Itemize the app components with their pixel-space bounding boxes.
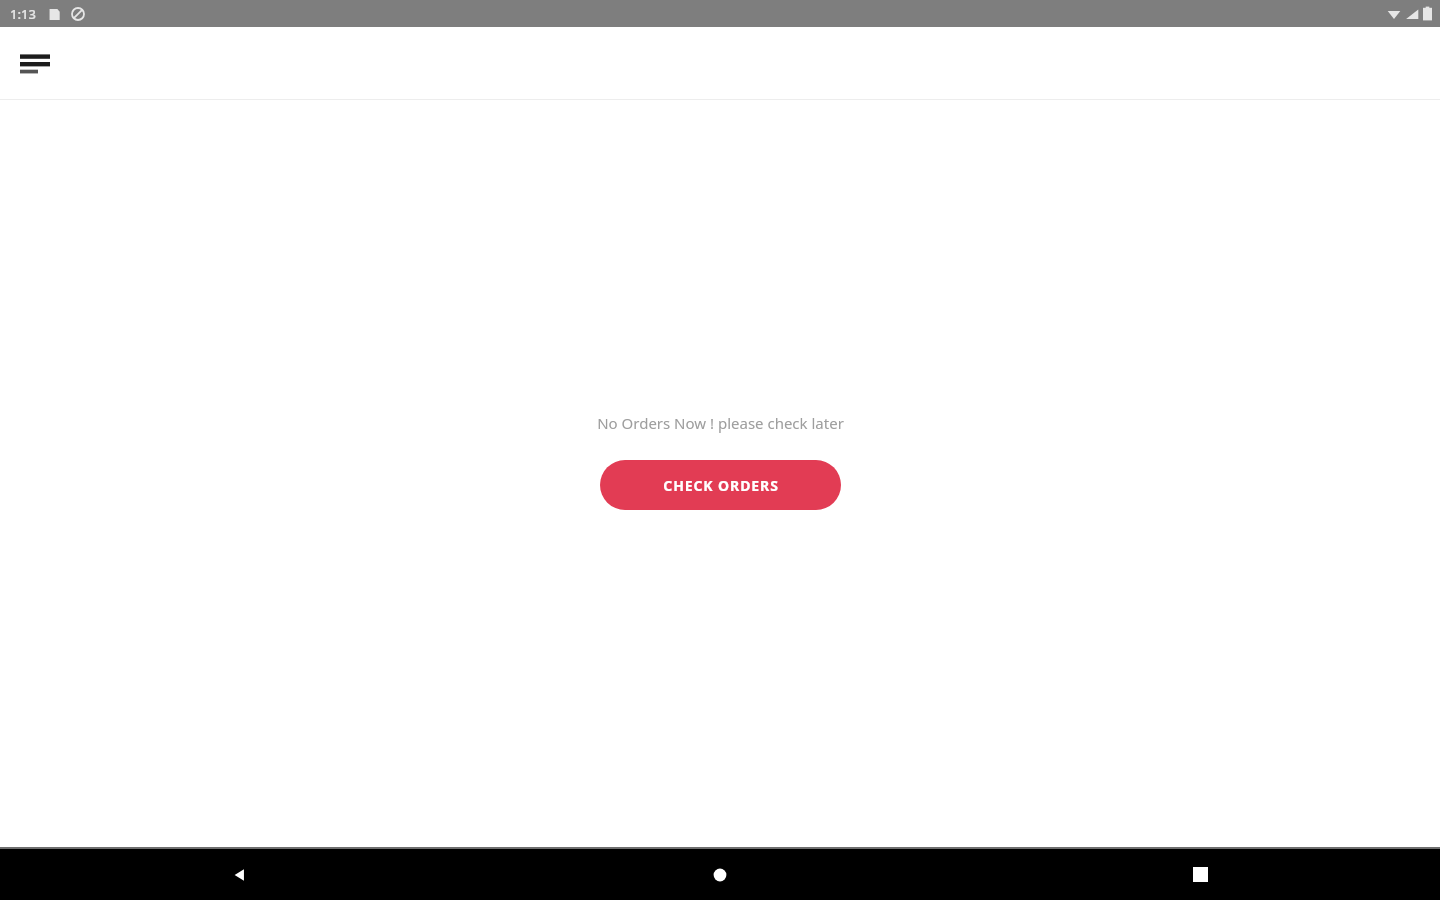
button[interactable]: Open navigation menu <box>11 39 59 87</box>
staticText: 1:13 <box>10 5 36 23</box>
button[interactable]: Recent apps <box>960 849 1440 900</box>
button[interactable]: Back <box>0 849 480 900</box>
button[interactable]: Home <box>480 849 960 900</box>
button[interactable]: CHECK ORDERS <box>600 460 841 510</box>
staticText: No Orders Now ! please check later <box>597 413 844 433</box>
staticText: CHECK ORDERS <box>663 476 779 495</box>
